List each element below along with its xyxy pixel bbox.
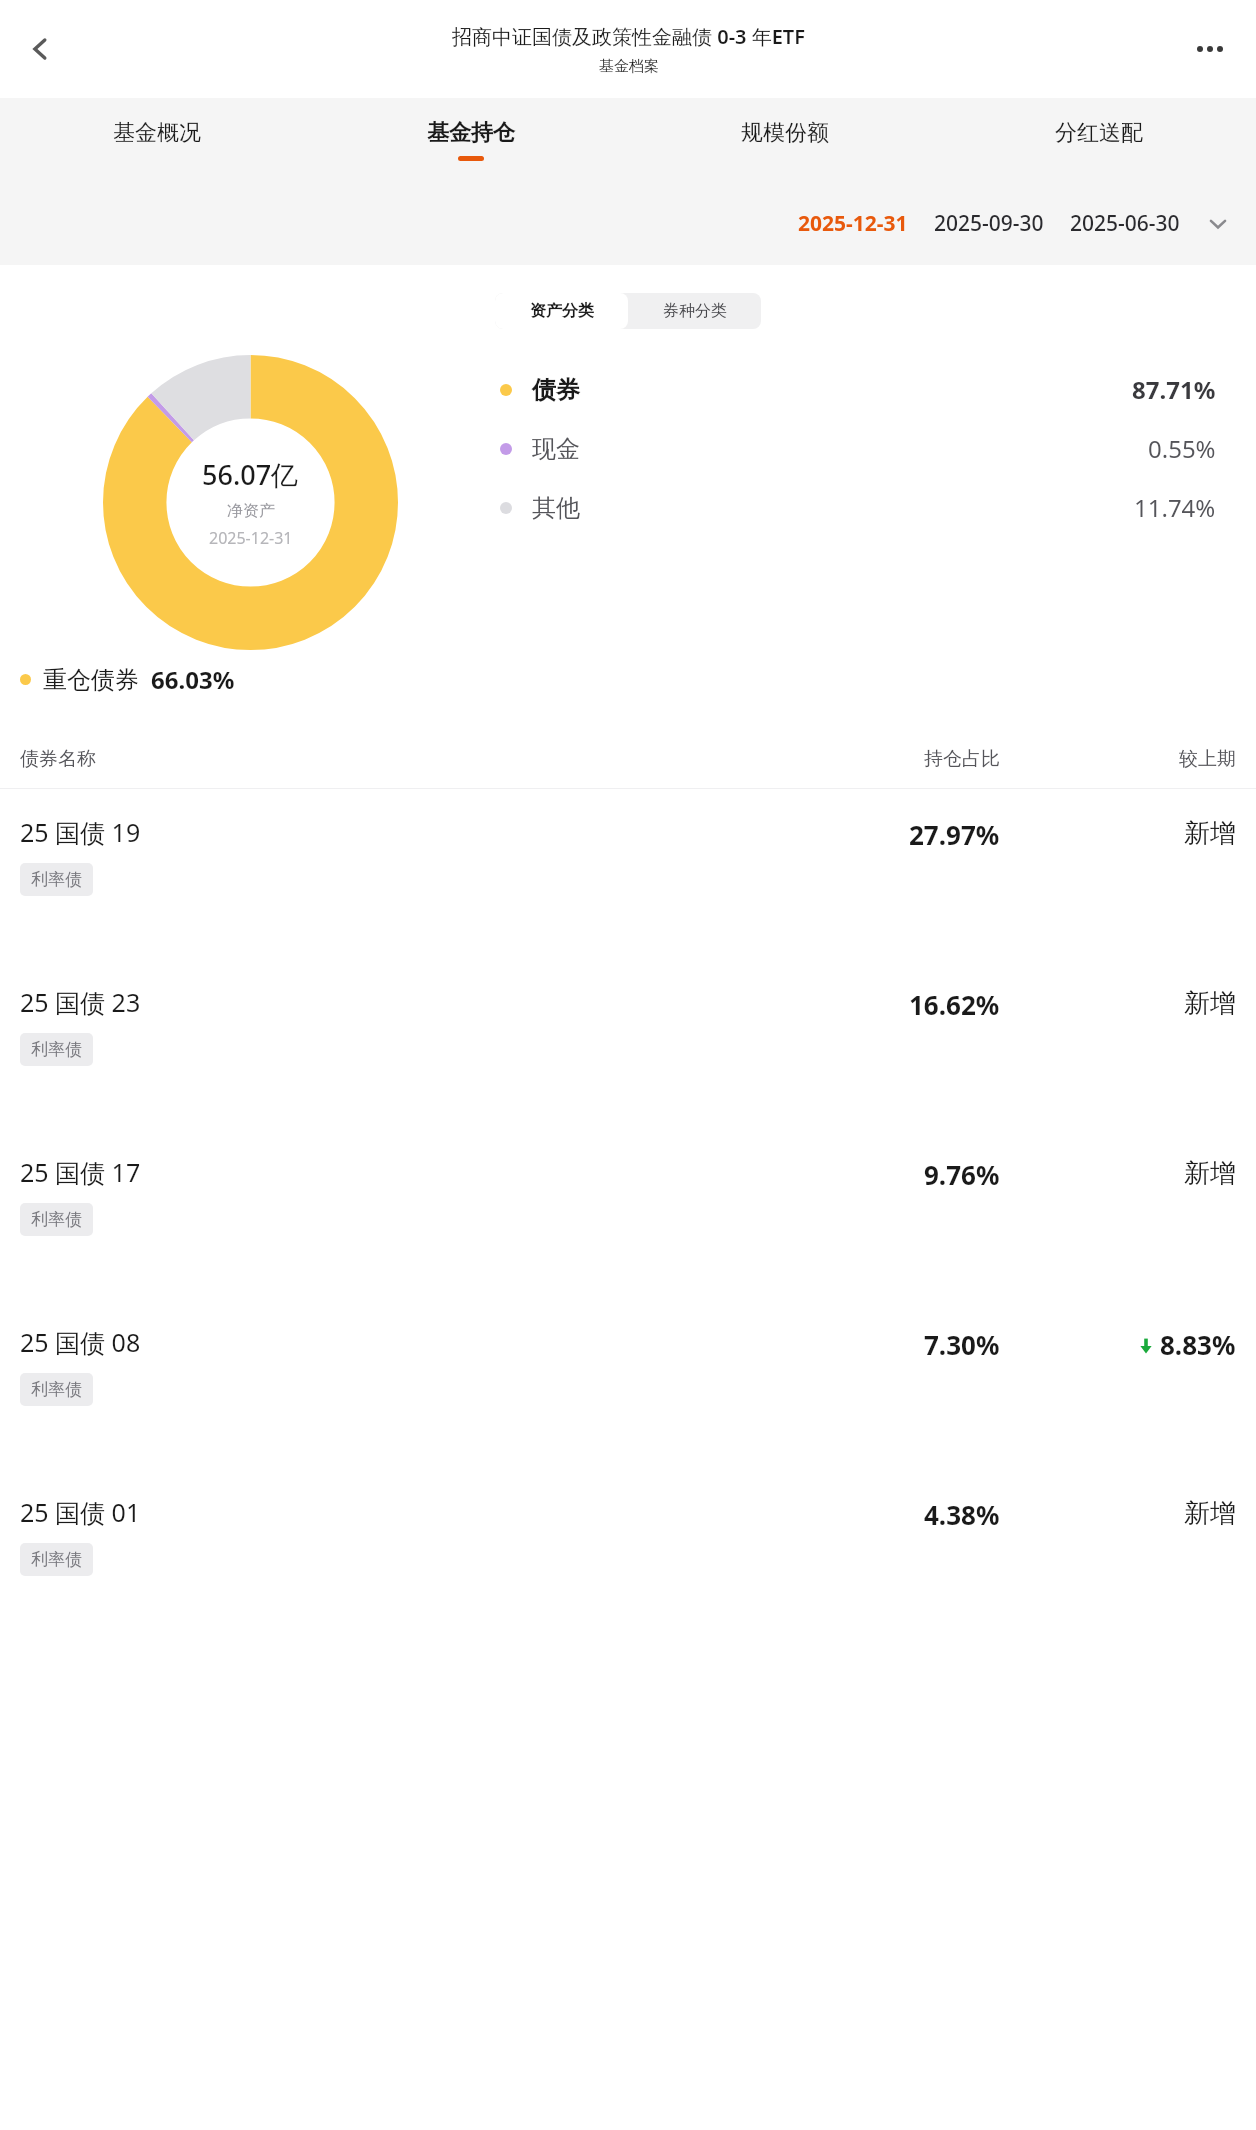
button[interactable]: 25 国债 08 [0,1299,1256,1469]
staticText: 25 国债 08 [20,1325,141,1359]
staticText: 27.97% [909,817,1000,852]
staticText: 7.30% [924,1327,1000,1362]
staticText: 25 国债 01 [20,1495,141,1529]
staticText: 利率债 [31,1549,82,1570]
staticText: 新增 [1184,1157,1236,1190]
button[interactable]: 25 国债 17 [0,1129,1256,1299]
staticText: 招商中证国债及政策性金融债 0-3 年ETF [452,23,805,50]
staticText: 利率债 [31,869,82,890]
button[interactable]: 券种分类 [628,293,761,329]
staticText: 利率债 [31,1039,82,1060]
staticText: 其他 [532,493,580,523]
staticText: 新增 [1184,1497,1236,1530]
button[interactable]: 25 国债 19 [0,789,1256,959]
staticText: 基金档案 [599,57,659,76]
staticText: 25 国债 23 [20,985,141,1019]
staticText: 9.76% [924,1157,1000,1192]
staticText: 较上期 [1036,747,1236,771]
staticText: 资产分类 [530,301,594,321]
staticText: 0.55% [1148,432,1216,465]
staticText: 2025-06-30 [1070,209,1180,238]
button[interactable]: 25 国债 23 [0,959,1256,1129]
button[interactable]: 资产分类 [495,293,628,329]
staticText: 重仓债券 [43,665,139,695]
staticText: 现金 [532,434,580,464]
button[interactable]: 2025-09-30 [934,203,1044,244]
staticText: 87.71% [1132,373,1216,406]
button[interactable]: 其他 [500,491,1216,524]
staticText: 新增 [1184,817,1236,850]
staticText: 利率债 [31,1379,82,1400]
button[interactable]: 债券 [500,373,1216,406]
staticText: 66.03% [151,663,235,696]
staticText: 4.38% [924,1497,1000,1532]
staticText: 8.83% [1160,1327,1236,1362]
staticText: 2025-09-30 [934,209,1044,238]
staticText: 2025-12-31 [798,209,908,238]
staticText: 16.62% [909,987,1000,1022]
staticText: 25 国债 19 [20,815,141,849]
button[interactable]: 分红送配 [942,98,1256,182]
staticText: 利率债 [31,1209,82,1230]
button[interactable]: 2025-12-31 [798,203,908,244]
staticText: 基金概况 [113,119,201,147]
button[interactable]: 现金 [500,432,1216,465]
staticText: 分红送配 [1055,119,1143,147]
staticText: 56.07亿 [202,456,299,493]
staticText: 规模份额 [741,119,829,147]
staticText: 持仓占比 [730,747,1000,771]
staticText: 基金持仓 [427,119,515,147]
button[interactable]: 规模份额 [628,98,942,182]
button[interactable]: 基金持仓 [314,98,628,182]
staticText: 25 国债 17 [20,1155,141,1189]
button[interactable]: 2025-06-30 [1070,203,1180,244]
staticText: 新增 [1184,987,1236,1020]
staticText: 债券 [532,375,580,405]
staticText: 净资产 [227,501,275,521]
staticText: 债券名称 [20,747,730,771]
button[interactable]: Back [12,21,68,77]
staticText: 2025-12-31 [209,527,293,549]
button[interactable]: Expand dates [1198,204,1238,244]
staticText: 11.74% [1134,491,1216,524]
staticText: 券种分类 [663,301,727,321]
button[interactable]: 25 国债 01 [0,1469,1256,1639]
button[interactable]: 基金概况 [0,98,314,182]
button[interactable]: More options [1182,21,1238,77]
